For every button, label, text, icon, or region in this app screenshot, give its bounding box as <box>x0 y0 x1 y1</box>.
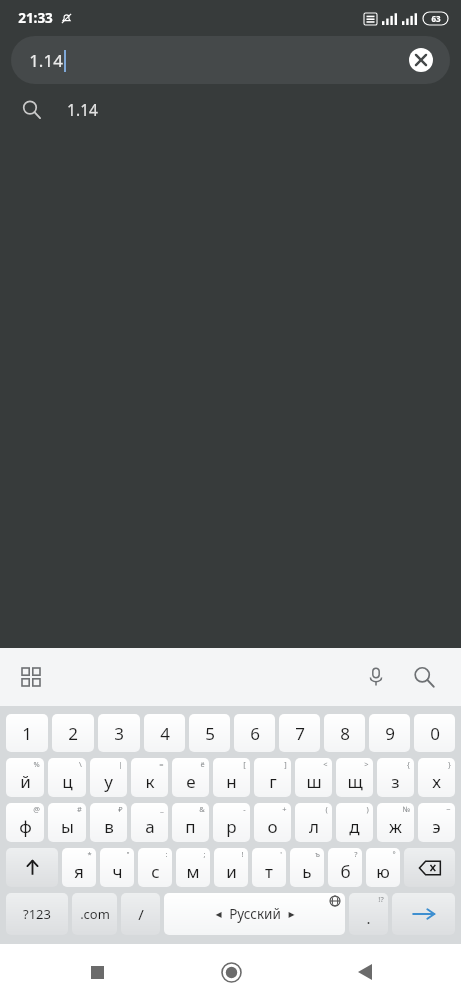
staticText: г <box>269 770 277 793</box>
button[interactable]: < <box>295 758 332 797</box>
button[interactable]: 6 <box>234 714 275 752</box>
button[interactable]: ?123 <box>6 893 68 935</box>
button[interactable]: Home <box>203 944 259 1000</box>
staticText: + <box>282 804 287 814</box>
button[interactable]: @ <box>6 803 44 842</box>
button[interactable]: \ <box>48 758 86 797</box>
button[interactable]: 7 <box>279 714 320 752</box>
button[interactable]: Clear <box>409 48 433 72</box>
button[interactable]: : <box>138 848 172 887</box>
button[interactable]: - <box>213 803 250 842</box>
staticText: в <box>104 815 114 838</box>
staticText: & <box>199 804 205 814</box>
staticText: ф <box>19 815 32 838</box>
staticText: щ <box>347 770 363 793</box>
staticText: ◀ <box>215 910 222 919</box>
staticText: 6 <box>250 722 260 745</box>
button[interactable]: ~ <box>418 803 455 842</box>
staticText: д <box>349 815 360 838</box>
button[interactable]: ? <box>328 848 362 887</box>
staticText: { <box>407 759 410 769</box>
button[interactable]: > <box>336 758 373 797</box>
button[interactable]: Enter <box>392 893 455 935</box>
button[interactable]: 4 <box>144 714 185 752</box>
button[interactable]: Space, Русский <box>164 893 345 935</box>
staticText: % <box>33 759 40 769</box>
button[interactable]: ъ <box>290 848 324 887</box>
staticText: 4 <box>160 722 170 745</box>
staticText: б <box>340 860 351 883</box>
button[interactable]: " <box>100 848 134 887</box>
staticText: л <box>309 815 319 838</box>
staticText: ь <box>302 860 312 883</box>
button[interactable]: Search <box>409 662 439 692</box>
staticText: > <box>364 759 369 769</box>
button[interactable]: 1 <box>6 714 48 752</box>
staticText: ! <box>241 849 244 859</box>
button[interactable]: Backspace <box>404 848 455 887</box>
button[interactable]: № <box>377 803 414 842</box>
button[interactable]: ( <box>295 803 332 842</box>
staticText: ?123 <box>23 905 51 923</box>
button[interactable]: } <box>418 758 455 797</box>
staticText: к <box>145 770 155 793</box>
button[interactable]: !? <box>349 893 388 935</box>
button[interactable]: Back <box>337 944 393 1000</box>
button[interactable]: [ <box>213 758 250 797</box>
staticText: 21:33 <box>18 9 53 27</box>
staticText: ы <box>61 815 74 838</box>
staticText: 1.14 <box>67 99 98 120</box>
staticText: !? <box>378 894 384 904</box>
button[interactable]: + <box>254 803 291 842</box>
staticText: я <box>74 860 84 883</box>
button[interactable]: Voice input <box>361 662 391 692</box>
button[interactable]: Recents <box>69 944 125 1000</box>
button[interactable]: ₽ <box>90 803 127 842</box>
button[interactable]: = <box>131 758 168 797</box>
button[interactable]: ' <box>252 848 286 887</box>
button[interactable]: 0 <box>414 714 455 752</box>
staticText: ₽ <box>118 804 123 814</box>
staticText: : <box>165 849 168 859</box>
staticText: | <box>118 759 123 769</box>
staticText: @ <box>33 804 40 814</box>
button[interactable]: 1.14 <box>0 84 461 134</box>
button[interactable]: 8 <box>324 714 365 752</box>
staticText: ▶ <box>288 910 295 919</box>
staticText: с <box>151 860 160 883</box>
staticText: ? <box>354 849 358 859</box>
button[interactable]: 1.14 <box>11 36 450 84</box>
button[interactable]: 5 <box>189 714 230 752</box>
button[interactable]: * <box>62 848 96 887</box>
staticText: - <box>243 804 246 814</box>
button[interactable]: _ <box>131 803 168 842</box>
button[interactable]: ] <box>254 758 291 797</box>
button[interactable]: / <box>121 893 160 935</box>
button[interactable]: ! <box>214 848 248 887</box>
button[interactable]: { <box>377 758 414 797</box>
button[interactable]: ) <box>336 803 373 842</box>
staticText: т <box>265 860 273 883</box>
button[interactable]: 3 <box>98 714 140 752</box>
staticText: 8 <box>340 722 350 745</box>
staticText: } <box>448 759 451 769</box>
staticText: у <box>104 770 113 793</box>
button[interactable]: % <box>6 758 44 797</box>
button[interactable]: ё <box>172 758 209 797</box>
staticText: ё <box>200 759 205 769</box>
staticText: ] <box>284 759 287 769</box>
staticText: ш <box>306 770 322 793</box>
button[interactable]: ; <box>176 848 210 887</box>
button[interactable]: Apps <box>18 664 44 690</box>
button[interactable]: 2 <box>52 714 94 752</box>
staticText: ю <box>376 860 390 883</box>
button[interactable]: ° <box>366 848 400 887</box>
button[interactable]: | <box>90 758 127 797</box>
button[interactable]: # <box>48 803 86 842</box>
button[interactable]: Shift <box>6 848 58 887</box>
button[interactable]: 9 <box>369 714 410 752</box>
staticText: _ <box>160 804 164 814</box>
staticText: " <box>126 849 130 859</box>
button[interactable]: .com <box>72 893 117 935</box>
button[interactable]: & <box>172 803 209 842</box>
